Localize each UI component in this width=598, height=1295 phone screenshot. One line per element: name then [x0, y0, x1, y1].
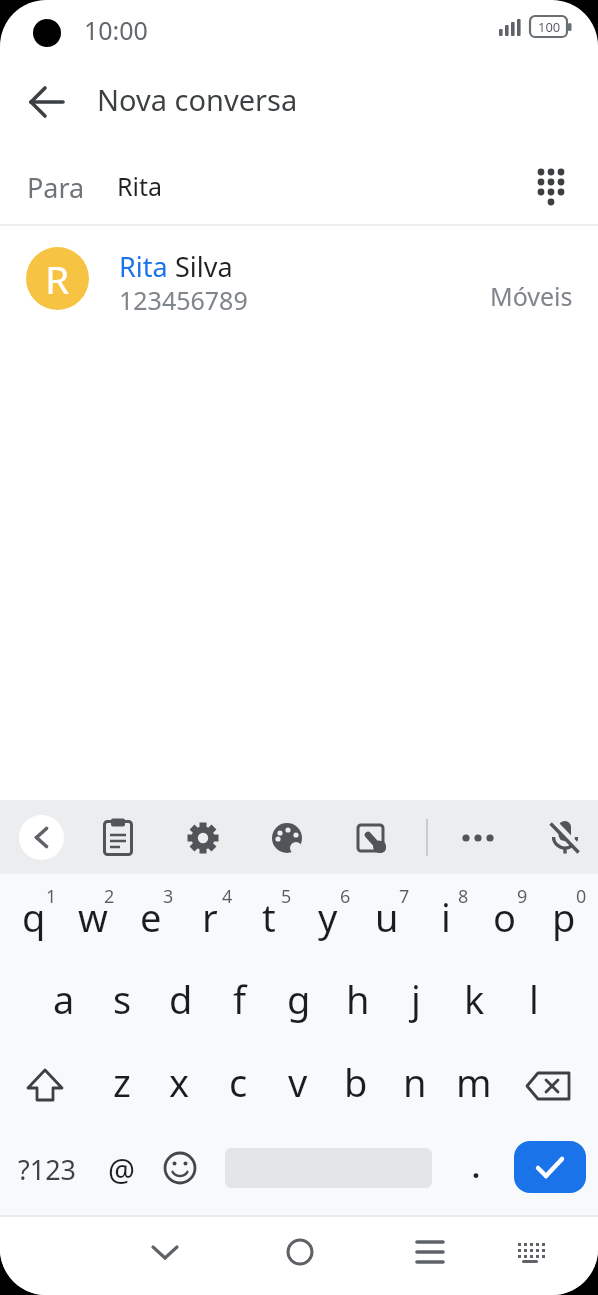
- button[interactable]: [347, 813, 395, 861]
- button[interactable]: [19, 815, 64, 860]
- staticText: l: [529, 973, 539, 1025]
- staticText: 5: [281, 884, 292, 909]
- button[interactable]: x: [150, 1040, 209, 1124]
- staticText: 1: [46, 884, 57, 909]
- button[interactable]: t: [239, 875, 298, 959]
- button[interactable]: b: [326, 1040, 385, 1124]
- button[interactable]: p: [534, 875, 593, 959]
- staticText: r: [202, 891, 218, 943]
- staticText: 9: [517, 884, 528, 909]
- staticText: f: [233, 973, 247, 1025]
- staticText: Móveis: [490, 279, 573, 313]
- staticText: o: [493, 891, 516, 943]
- staticText: k: [464, 973, 485, 1025]
- button[interactable]: d: [151, 957, 210, 1041]
- button[interactable]: [15, 1054, 77, 1116]
- button[interactable]: [406, 1228, 454, 1276]
- button[interactable]: w: [63, 875, 122, 959]
- button[interactable]: ?123: [14, 1146, 80, 1192]
- button[interactable]: [276, 1228, 324, 1276]
- button[interactable]: v: [268, 1040, 327, 1124]
- staticText: u: [375, 891, 399, 943]
- staticText: 10:00: [84, 13, 148, 47]
- button[interactable]: [454, 813, 502, 861]
- button[interactable]: u: [357, 875, 416, 959]
- staticText: 7: [399, 884, 410, 909]
- button[interactable]: a: [34, 957, 93, 1041]
- button[interactable]: c: [209, 1040, 268, 1124]
- button[interactable]: z: [92, 1040, 151, 1124]
- staticText: 4: [222, 884, 233, 909]
- staticText: j: [411, 973, 421, 1025]
- button[interactable]: [179, 813, 227, 861]
- staticText: Nova conversa: [97, 80, 298, 119]
- staticText: b: [344, 1056, 368, 1108]
- staticText: s: [113, 973, 132, 1025]
- staticText: q: [22, 891, 46, 943]
- staticText: ?123: [18, 1151, 77, 1188]
- staticText: 100: [538, 18, 561, 36]
- button[interactable]: [94, 813, 142, 861]
- button[interactable]: [156, 1144, 204, 1192]
- staticText: c: [229, 1056, 248, 1108]
- button[interactable]: h: [328, 957, 387, 1041]
- button[interactable]: r: [180, 875, 239, 959]
- staticText: 2: [104, 884, 115, 909]
- staticText: x: [169, 1056, 190, 1108]
- staticText: g: [287, 973, 311, 1025]
- staticText: n: [403, 1056, 427, 1108]
- button[interactable]: s: [93, 957, 152, 1041]
- staticText: z: [113, 1056, 131, 1108]
- staticText: m: [456, 1056, 492, 1108]
- staticText: 6: [340, 884, 351, 909]
- staticText: 0: [576, 884, 587, 909]
- staticText: .: [472, 1148, 480, 1186]
- button[interactable]: .: [455, 1144, 497, 1190]
- button[interactable]: R: [0, 226, 598, 333]
- staticText: p: [552, 891, 576, 943]
- staticText: @: [108, 1149, 135, 1190]
- button[interactable]: q: [4, 875, 63, 959]
- button[interactable]: l: [504, 957, 563, 1041]
- staticText: Rita: [119, 248, 168, 285]
- staticText: a: [53, 973, 75, 1025]
- button[interactable]: [514, 1141, 586, 1193]
- button[interactable]: e: [121, 875, 180, 959]
- button[interactable]: j: [386, 957, 445, 1041]
- staticText: Rita: [117, 169, 163, 203]
- staticText: v: [288, 1056, 308, 1108]
- staticText: d: [169, 973, 193, 1025]
- staticText: Para: [27, 169, 85, 206]
- button[interactable]: y: [298, 875, 357, 959]
- button[interactable]: [23, 78, 71, 126]
- button[interactable]: o: [475, 875, 534, 959]
- button[interactable]: [263, 813, 311, 861]
- button[interactable]: [506, 1228, 554, 1276]
- staticText: t: [262, 891, 276, 943]
- button[interactable]: k: [445, 957, 504, 1041]
- button[interactable]: [141, 1228, 189, 1276]
- staticText: w: [78, 891, 108, 943]
- button[interactable]: [527, 163, 575, 211]
- button[interactable]: @: [95, 1146, 147, 1192]
- staticText: 8: [458, 884, 469, 909]
- button[interactable]: g: [269, 957, 328, 1041]
- staticText: 123456789: [119, 283, 248, 317]
- button[interactable]: [519, 1054, 581, 1116]
- staticText: h: [346, 973, 370, 1025]
- staticText: e: [140, 891, 162, 943]
- staticText: R: [45, 252, 70, 305]
- button[interactable]: [541, 813, 589, 861]
- button[interactable]: n: [385, 1040, 444, 1124]
- button[interactable]: i: [416, 875, 475, 959]
- button[interactable]: m: [444, 1040, 503, 1124]
- staticText: i: [441, 891, 451, 943]
- staticText: 3: [163, 884, 174, 909]
- button[interactable]: f: [210, 957, 269, 1041]
- staticText: Silva: [168, 248, 233, 285]
- staticText: y: [318, 891, 338, 943]
